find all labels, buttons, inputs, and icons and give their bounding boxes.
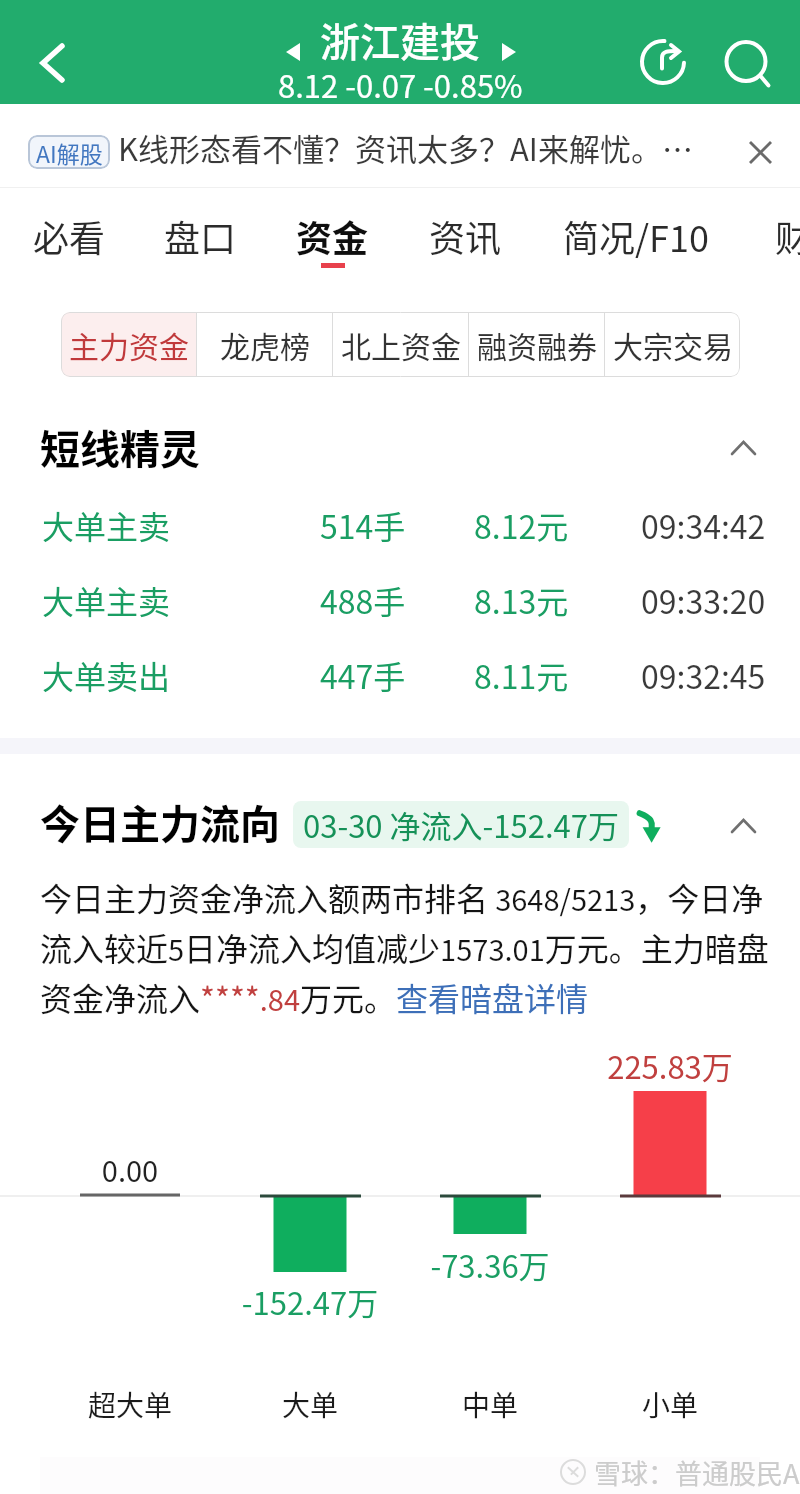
button[interactable]: 盘口 [146,210,255,296]
staticText: 8.13元 [474,577,569,623]
staticText: -73.36万 [340,1242,640,1287]
button[interactable]: 必看 [15,210,124,296]
staticText: 447手 [320,652,406,698]
staticText: 09:34:42 [641,502,766,548]
button[interactable]: Back [20,30,84,94]
button[interactable]: 龙虎榜 [197,312,332,377]
button[interactable]: 大单卖出 [0,635,800,707]
staticText: 盘口 [164,210,237,262]
button[interactable]: Close [736,128,784,176]
staticText: 514手 [320,502,406,548]
staticText: 09:32:45 [641,652,766,698]
staticText: 小单 [520,1384,800,1425]
button[interactable]: 大单主卖 [0,485,800,557]
button[interactable]: 资金 [278,210,387,296]
staticText: 大单主卖 [42,502,171,548]
button[interactable]: 03-30 净流入-152.47万 [293,801,629,848]
staticText: 财 [775,210,800,262]
button[interactable]: 资讯 [411,210,520,296]
staticText: 今日主力资金净流入额两市排名 3648/5213，今日净流入较近5日净流入均值减… [40,874,776,1020]
staticText: 资讯 [429,210,502,262]
button[interactable]: Search [709,27,773,91]
staticText: 09:33:20 [641,577,766,623]
button[interactable]: 大单主卖 [0,560,800,632]
button[interactable]: 简况/F10 [545,210,727,296]
staticText: 资金 [296,210,369,262]
staticText: 03-30 净流入-152.47万 [303,802,619,847]
staticText: 0.00 [0,1148,280,1190]
staticText: 融资融券 [477,323,597,366]
staticText: 浙江建投 [320,11,480,69]
staticText: 488手 [320,577,406,623]
staticText: 225.83万 [520,1043,800,1088]
button[interactable]: 主力资金 [61,312,196,377]
staticText: 8.12元 [474,502,569,548]
button[interactable]: 北上资金 [333,312,468,377]
staticText: 8.12 -0.07 -0.85% [278,62,523,107]
staticText: 今日主力流向 [40,793,280,851]
staticText: K线形态看不懂？资讯太多？AI来解忧。… [118,125,693,170]
staticText: 雪球：普通股民A [594,1453,800,1491]
staticText: -152.47万 [160,1279,460,1324]
staticText: 超大单 [0,1384,280,1425]
button[interactable]: 融资融券 [469,312,604,377]
staticText: 中单 [340,1384,640,1425]
button[interactable]: Collapse flow section [719,802,767,850]
staticText: 大单主卖 [42,577,171,623]
staticText: 短线精灵 [40,418,200,476]
staticText: 大单卖出 [42,652,171,698]
staticText: 主力资金 [69,323,189,366]
staticText: 龙虎榜 [220,323,310,366]
button[interactable]: 财 [757,210,800,296]
button[interactable]: AI解股 [0,104,800,187]
staticText: 北上资金 [341,323,461,366]
button[interactable]: Collapse short line section [719,424,767,472]
staticText: 简况/F10 [563,210,709,262]
staticText: 大单 [160,1384,460,1425]
staticText: 必看 [33,210,106,262]
staticText: 8.11元 [474,652,569,698]
staticText: AI解股 [36,136,103,169]
staticText: 大宗交易 [613,323,733,366]
button[interactable]: 大宗交易 [605,312,740,377]
button[interactable]: Share [631,30,695,94]
